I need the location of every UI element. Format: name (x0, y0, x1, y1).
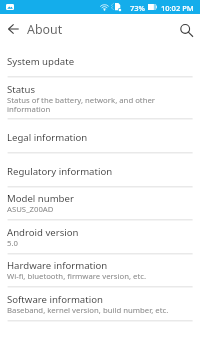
staticText: Software information (7, 293, 103, 306)
button[interactable]: Search (172, 16, 200, 44)
staticText: 10:02 PM (161, 3, 194, 13)
staticText: Status of the battery, network, and othe… (7, 95, 192, 115)
button[interactable]: Regulatory information (0, 154, 200, 188)
staticText: Model number (7, 192, 74, 205)
staticText: Hardware information (7, 259, 108, 272)
button[interactable]: Model number (0, 187, 200, 221)
button[interactable]: Hardware information (0, 254, 200, 288)
staticText: Regulatory information (7, 165, 113, 178)
button[interactable]: Software information (0, 288, 200, 322)
staticText: Wi-fi, bluetooth, firmware version, etc. (7, 271, 146, 282)
staticText: Legal information (7, 131, 88, 144)
staticText: Status (7, 83, 36, 96)
staticText: Baseband, kernel version, build number, … (7, 305, 169, 316)
staticText: About (27, 21, 63, 38)
staticText: Android version (7, 226, 79, 239)
staticText: 73% (130, 3, 145, 13)
staticText: System update (7, 55, 75, 68)
button[interactable]: System update (0, 44, 200, 78)
button[interactable]: Status (0, 78, 200, 120)
button[interactable]: Legal information (0, 120, 200, 154)
staticText: 5.0 (7, 238, 18, 249)
button[interactable]: Navigate up (0, 15, 27, 43)
staticText: ASUS_Z00AD (7, 204, 54, 215)
button[interactable]: Android version (0, 221, 200, 255)
